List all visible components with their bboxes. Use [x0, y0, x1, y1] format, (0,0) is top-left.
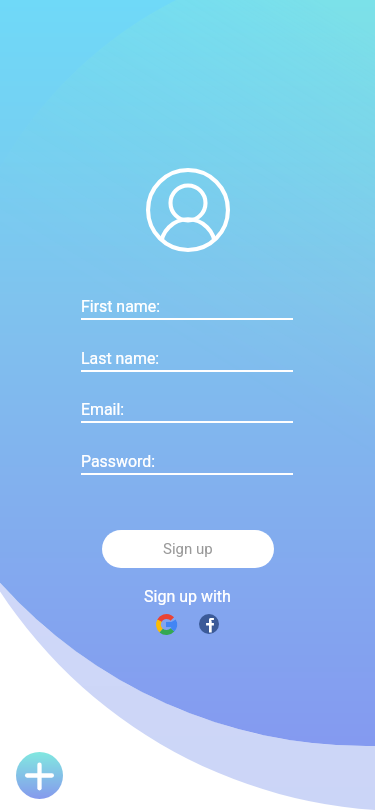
- staticText: Email:: [81, 400, 125, 419]
- button[interactable]: Last name:: [81, 340, 293, 378]
- staticText: First name:: [81, 297, 161, 316]
- button[interactable]: First name:: [81, 288, 293, 326]
- staticText: Sign up with: [144, 587, 231, 606]
- button[interactable]: Sign up: [102, 530, 274, 568]
- staticText: Sign up: [163, 540, 213, 558]
- staticText: Last name:: [81, 349, 160, 368]
- button[interactable]: Sign up with Google: [155, 613, 177, 635]
- button[interactable]: Password:: [81, 443, 293, 481]
- button[interactable]: Add: [16, 752, 63, 799]
- staticText: Password:: [81, 452, 156, 471]
- button[interactable]: Email:: [81, 391, 293, 429]
- button[interactable]: Sign up with Facebook: [198, 613, 220, 635]
